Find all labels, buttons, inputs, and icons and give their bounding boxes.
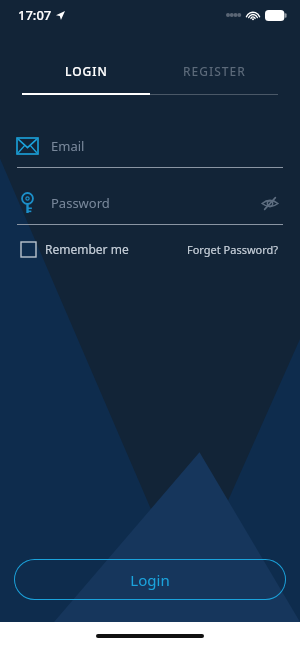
staticText: Email bbox=[51, 137, 85, 155]
button[interactable]: Show password bbox=[257, 190, 283, 216]
button[interactable]: REGISTER bbox=[150, 63, 278, 79]
staticText: REGISTER bbox=[183, 63, 246, 79]
button[interactable]: LOGIN bbox=[22, 63, 150, 79]
button[interactable]: Forget Password? bbox=[187, 242, 279, 257]
staticText: 17:07 bbox=[18, 6, 52, 24]
button[interactable]: Email bbox=[17, 133, 283, 168]
button[interactable]: Login bbox=[14, 559, 286, 600]
staticText: LOGIN bbox=[65, 63, 108, 79]
button[interactable]: Remember me bbox=[21, 241, 129, 257]
staticText: Login bbox=[130, 570, 170, 590]
staticText: Remember me bbox=[45, 241, 129, 257]
staticText: Forget Password? bbox=[187, 242, 279, 257]
staticText: Password bbox=[51, 194, 110, 212]
button[interactable]: Password bbox=[17, 190, 283, 225]
